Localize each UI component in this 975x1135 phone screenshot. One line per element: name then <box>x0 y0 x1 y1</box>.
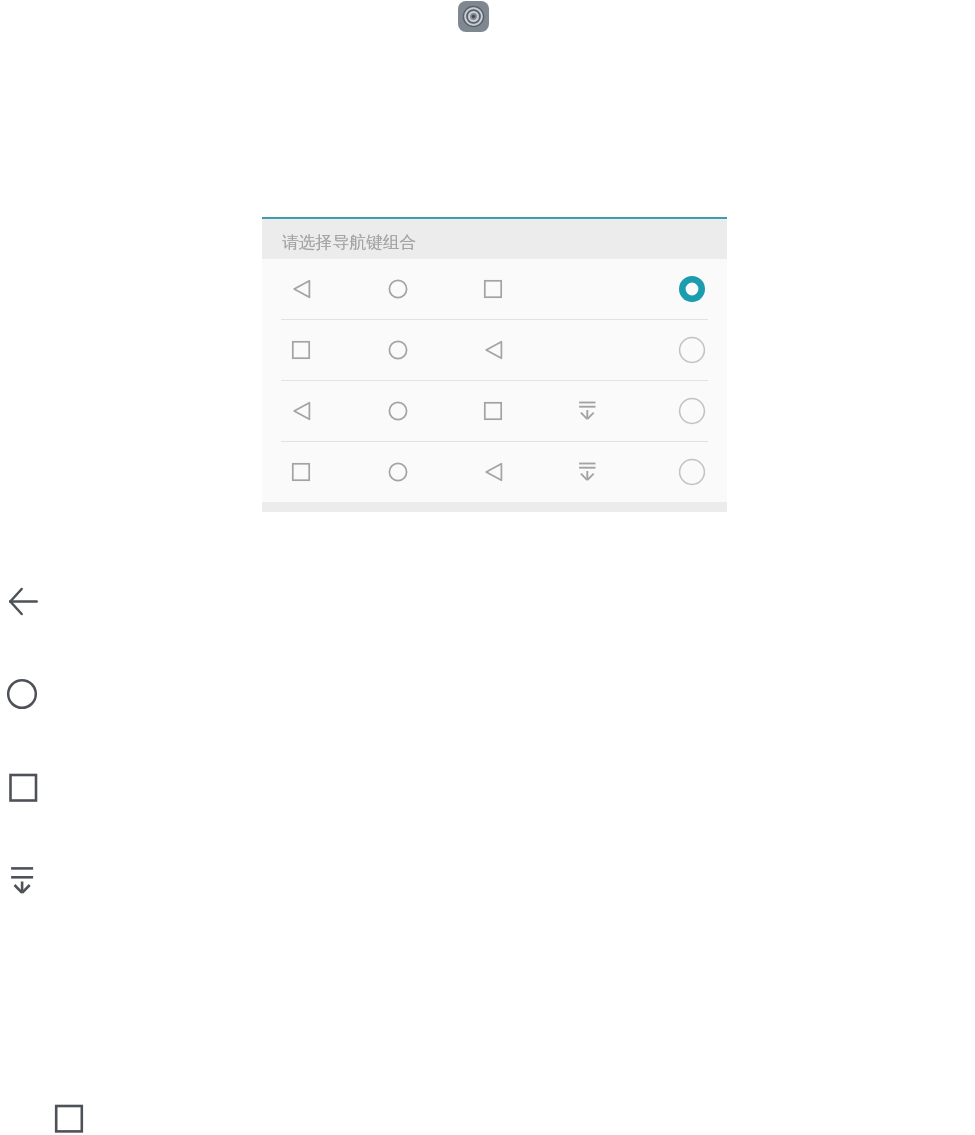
button[interactable]: Back <box>4 583 42 621</box>
button[interactable]: Recent apps <box>4 769 42 807</box>
button[interactable]: Back, Home, Recents, Notification panel <box>262 381 727 441</box>
staticText: 请选择导航键组合 <box>282 232 417 253</box>
button[interactable]: Recents, Home, Back <box>262 320 727 380</box>
button[interactable]: Recent apps <box>51 1101 87 1135</box>
button[interactable]: Notification panel <box>4 860 42 898</box>
button[interactable]: App shortcut <box>458 1 489 32</box>
button[interactable]: Recents, Home, Back, Notification panel <box>262 442 727 502</box>
button[interactable]: Home <box>4 676 42 714</box>
button[interactable]: Back, Home, Recents <box>262 259 727 319</box>
